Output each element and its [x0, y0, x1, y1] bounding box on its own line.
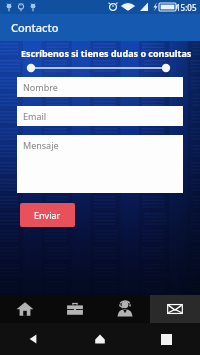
button[interactable]: Enviar: [20, 203, 75, 227]
staticText: Email: [23, 110, 47, 122]
button[interactable]: Email: [17, 106, 183, 126]
staticText: 15:05: [176, 2, 197, 13]
button[interactable]: Mensaje: [17, 135, 183, 193]
staticText: Escríbenos si tienes dudas o consultas: [21, 47, 192, 59]
staticText: Enviar: [34, 209, 61, 221]
staticText: Nombre: [23, 81, 58, 93]
button[interactable]: Agent: [100, 295, 150, 323]
button[interactable]: Services: [50, 295, 100, 323]
button[interactable]: Contact: [150, 295, 200, 323]
button[interactable]: Nombre: [17, 77, 183, 97]
button[interactable]: Home: [0, 295, 50, 323]
button[interactable]: Recents: [133, 323, 200, 355]
staticText: Mensaje: [23, 139, 59, 151]
button[interactable]: Home: [66, 323, 133, 355]
button[interactable]: Back: [0, 323, 66, 355]
staticText: Contacto: [11, 20, 59, 35]
